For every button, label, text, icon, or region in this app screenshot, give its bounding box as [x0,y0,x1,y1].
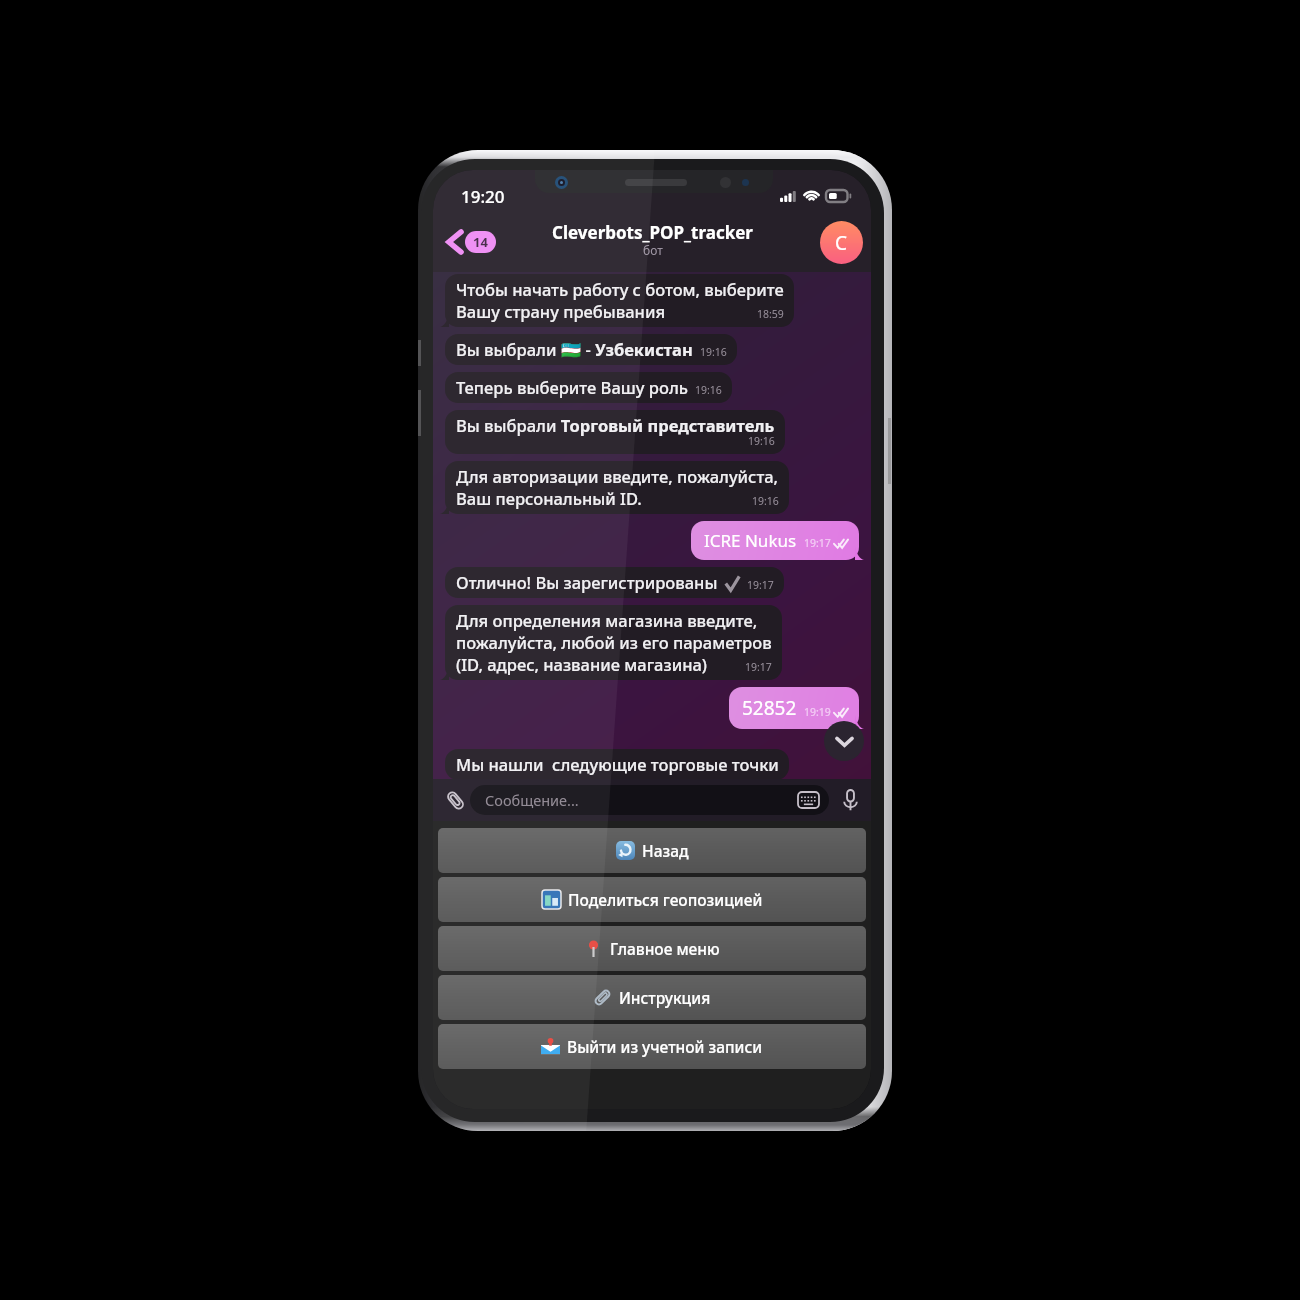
staticText: Назад [642,840,689,861]
button[interactable]: Profile [820,221,863,264]
button[interactable]: Главное меню [438,926,866,971]
staticText: 19:17 [747,578,774,592]
button[interactable]: ICRE Nukus [691,521,859,560]
staticText: Инструкция [619,987,711,1008]
staticText: Главное меню [610,938,720,959]
staticText: C [835,230,848,256]
button[interactable]: 52852 [729,687,859,729]
staticText: Ваш персональный ID. [456,487,642,509]
button[interactable]: Чтобы начать работу с ботом, выберите [445,274,794,327]
button[interactable]: Инструкция [438,975,866,1020]
staticText: Сообщение... [485,790,579,810]
staticText: Вы выбрали Торговый представитель [456,414,775,436]
staticText: (ID, адрес, название магазина) [456,653,708,675]
button[interactable]: Для авторизации введите, пожалуйста, [445,461,789,514]
button[interactable]: Мы нашли следующие торговые точки [445,749,789,780]
staticText: 52852 [742,695,797,721]
button[interactable]: Attach [440,785,470,815]
staticText: Для определения магазина введите, [456,609,758,631]
staticText: Поделиться геопозицией [568,889,763,910]
staticText: Вашу страну пребывания [456,300,666,322]
staticText: Вы выбрали 🇺🇿 - Узбекистан [456,338,693,360]
staticText: 19:16 [748,434,775,448]
staticText: Отлично! Вы зарегистрированы [456,571,718,593]
staticText: Теперь выберите Вашу роль [456,376,688,398]
button[interactable]: Назад [438,828,866,873]
staticText: бот [643,242,663,258]
button[interactable]: Сообщение... [470,785,829,815]
staticText: 19:16 [695,383,722,397]
staticText: Чтобы начать работу с ботом, выберите [456,278,784,300]
button[interactable]: Вы выбрали Торговый представитель [445,410,785,454]
staticText: Для авторизации введите, пожалуйста, [456,465,779,487]
staticText: Cleverbots_POP_tracker [552,221,753,244]
button[interactable]: Выйти из учетной записи [438,1024,866,1069]
staticText: 19:17 [745,660,772,674]
staticText: 19:17 [804,536,831,550]
button[interactable]: Voice message [835,785,865,815]
staticText: Выйти из учетной записи [567,1036,763,1057]
button[interactable]: Поделиться геопозицией [438,877,866,922]
button[interactable]: Scroll to bottom [824,721,864,761]
staticText: 18:59 [757,307,784,321]
button[interactable]: Теперь выберите Вашу роль [445,372,732,403]
staticText: 19:20 [461,185,505,208]
button[interactable]: Back [443,224,500,260]
staticText: ICRE Nukus [704,529,797,552]
staticText: пожалуйста, любой из его параметров [456,631,772,653]
button[interactable]: Отлично! Вы зарегистрированы [445,567,784,598]
staticText: 14 [473,233,488,251]
button[interactable]: Вы выбрали 🇺🇿 - Узбекистан [445,334,737,365]
staticText: 19:19 [804,705,831,719]
button[interactable]: Для определения магазина введите, [445,605,782,680]
staticText: 19:16 [752,494,779,508]
staticText: Мы нашли следующие торговые точки [456,753,779,775]
staticText: 19:16 [700,345,727,359]
